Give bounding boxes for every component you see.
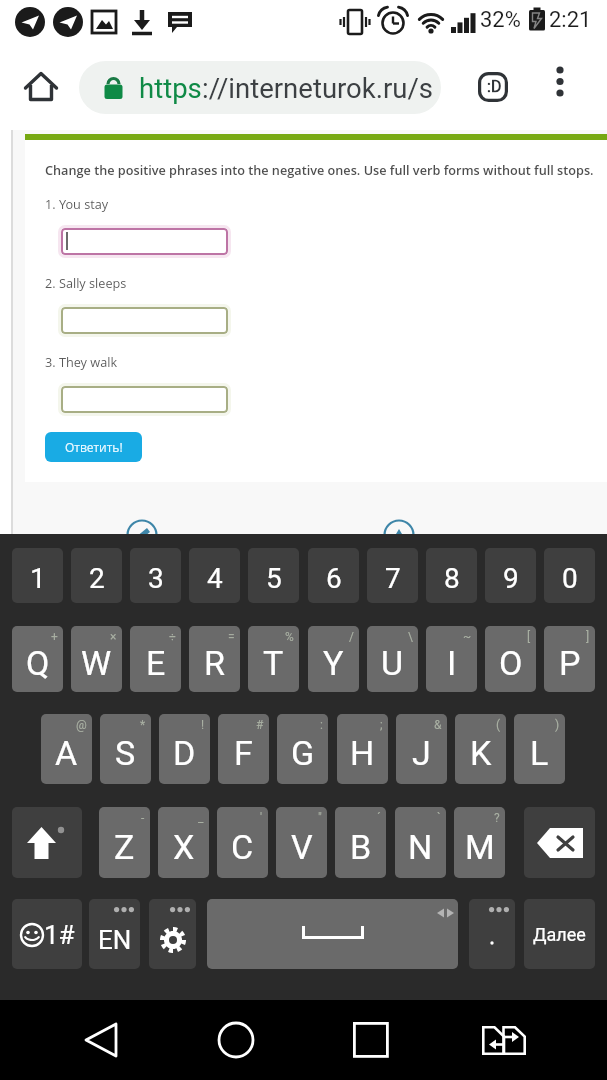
staticText: = [228, 630, 235, 644]
button[interactable]: ! [159, 714, 210, 784]
staticText: 4 [207, 562, 223, 595]
button[interactable]: https [79, 61, 441, 114]
staticText: × [110, 630, 117, 644]
staticText: & [434, 718, 442, 732]
button[interactable] [61, 386, 228, 413]
staticText: 2:21 [549, 7, 592, 33]
staticText: 32% [480, 7, 521, 33]
staticText: 1# [44, 920, 75, 950]
button[interactable]: 3 [130, 548, 181, 603]
button[interactable]: @ [41, 714, 92, 784]
staticText: H [350, 733, 375, 773]
button[interactable]: ' [217, 807, 268, 878]
staticText: @ [76, 718, 87, 732]
staticText: M [465, 827, 495, 867]
button[interactable]: 5 [248, 548, 299, 603]
staticText: Z [114, 827, 135, 867]
staticText: D [173, 733, 196, 773]
button[interactable]: 9 [485, 548, 536, 603]
staticText: 1. You stay [45, 195, 109, 212]
button[interactable]: * [100, 714, 151, 784]
staticText: [ [527, 630, 531, 644]
button[interactable]: Ответить! [45, 432, 142, 462]
staticText: V [291, 827, 313, 867]
button[interactable]: Space [207, 899, 458, 969]
staticText: W [81, 643, 112, 683]
button[interactable]: [ [485, 626, 536, 692]
staticText: % [285, 630, 294, 644]
staticText: # [256, 718, 264, 732]
button[interactable]: - [99, 807, 150, 878]
staticText: ~ [463, 630, 472, 644]
staticText: + [51, 630, 58, 644]
button[interactable]: ( [455, 714, 506, 784]
button[interactable]: Profile [478, 72, 508, 102]
staticText: ` [437, 811, 441, 825]
button[interactable]: : [277, 714, 328, 784]
button[interactable]: % [248, 626, 299, 692]
button[interactable]: ÷ [130, 626, 181, 692]
button[interactable]: Settings [149, 899, 196, 969]
button[interactable] [61, 228, 228, 255]
button[interactable]: _ [158, 807, 209, 878]
button[interactable]: ; [337, 714, 388, 784]
button[interactable]: 7 [367, 548, 418, 603]
button[interactable]: Switch apps [474, 1010, 534, 1070]
button[interactable]: Back [72, 1010, 132, 1070]
button[interactable]: 1 [12, 548, 63, 603]
button[interactable]: ` [395, 807, 446, 878]
staticText: I [447, 643, 457, 683]
button[interactable]: Home [206, 1010, 266, 1070]
staticText: ' [260, 811, 263, 825]
staticText: ´ [377, 811, 381, 825]
button[interactable]: ) [514, 714, 565, 784]
staticText: T [263, 643, 284, 683]
button[interactable] [61, 307, 228, 334]
staticText: K [470, 733, 492, 773]
staticText: " [318, 811, 322, 825]
staticText: 2. Sally sleeps [45, 274, 127, 291]
button[interactable]: & [396, 714, 447, 784]
staticText: C [231, 827, 254, 867]
button[interactable]: Period [469, 899, 515, 969]
staticText: ÷ [169, 630, 176, 644]
button[interactable]: / [308, 626, 359, 692]
button[interactable]: " [276, 807, 327, 878]
button[interactable]: + [12, 626, 63, 692]
button[interactable]: Home [24, 71, 58, 105]
staticText: / [349, 630, 354, 644]
staticText: Ответить! [65, 439, 123, 455]
button[interactable]: Recents [341, 1010, 401, 1070]
button[interactable]: Shift [12, 807, 82, 878]
button[interactable]: 0 [544, 548, 595, 603]
button[interactable]: ] [544, 626, 595, 692]
staticText: J [412, 733, 431, 773]
staticText: Change the positive phrases into the neg… [45, 161, 594, 178]
button[interactable]: × [71, 626, 122, 692]
staticText: E [146, 643, 166, 683]
button[interactable]: \ [367, 626, 418, 692]
button[interactable]: 8 [426, 548, 477, 603]
button[interactable]: 6 [308, 548, 359, 603]
button[interactable]: Language [89, 899, 140, 969]
staticText: : [320, 718, 323, 732]
staticText: O [499, 643, 523, 683]
button[interactable]: 2 [71, 548, 122, 603]
staticText: 8 [444, 562, 460, 595]
button[interactable]: 4 [189, 548, 240, 603]
button[interactable]: Symbols [12, 899, 82, 969]
button[interactable]: More options [546, 66, 574, 94]
staticText: P [559, 643, 581, 683]
staticText: R [204, 643, 225, 683]
button[interactable]: # [218, 714, 269, 784]
staticText: ] [586, 630, 590, 644]
button[interactable]: ? [454, 807, 505, 878]
staticText: 3. They walk [45, 353, 118, 370]
button[interactable]: = [189, 626, 240, 692]
staticText: _ [198, 811, 204, 825]
staticText: \ [408, 630, 413, 644]
button[interactable]: Далее [524, 899, 595, 969]
button[interactable]: ´ [335, 807, 386, 878]
button[interactable]: Backspace [524, 807, 595, 878]
button[interactable]: ~ [426, 626, 477, 692]
